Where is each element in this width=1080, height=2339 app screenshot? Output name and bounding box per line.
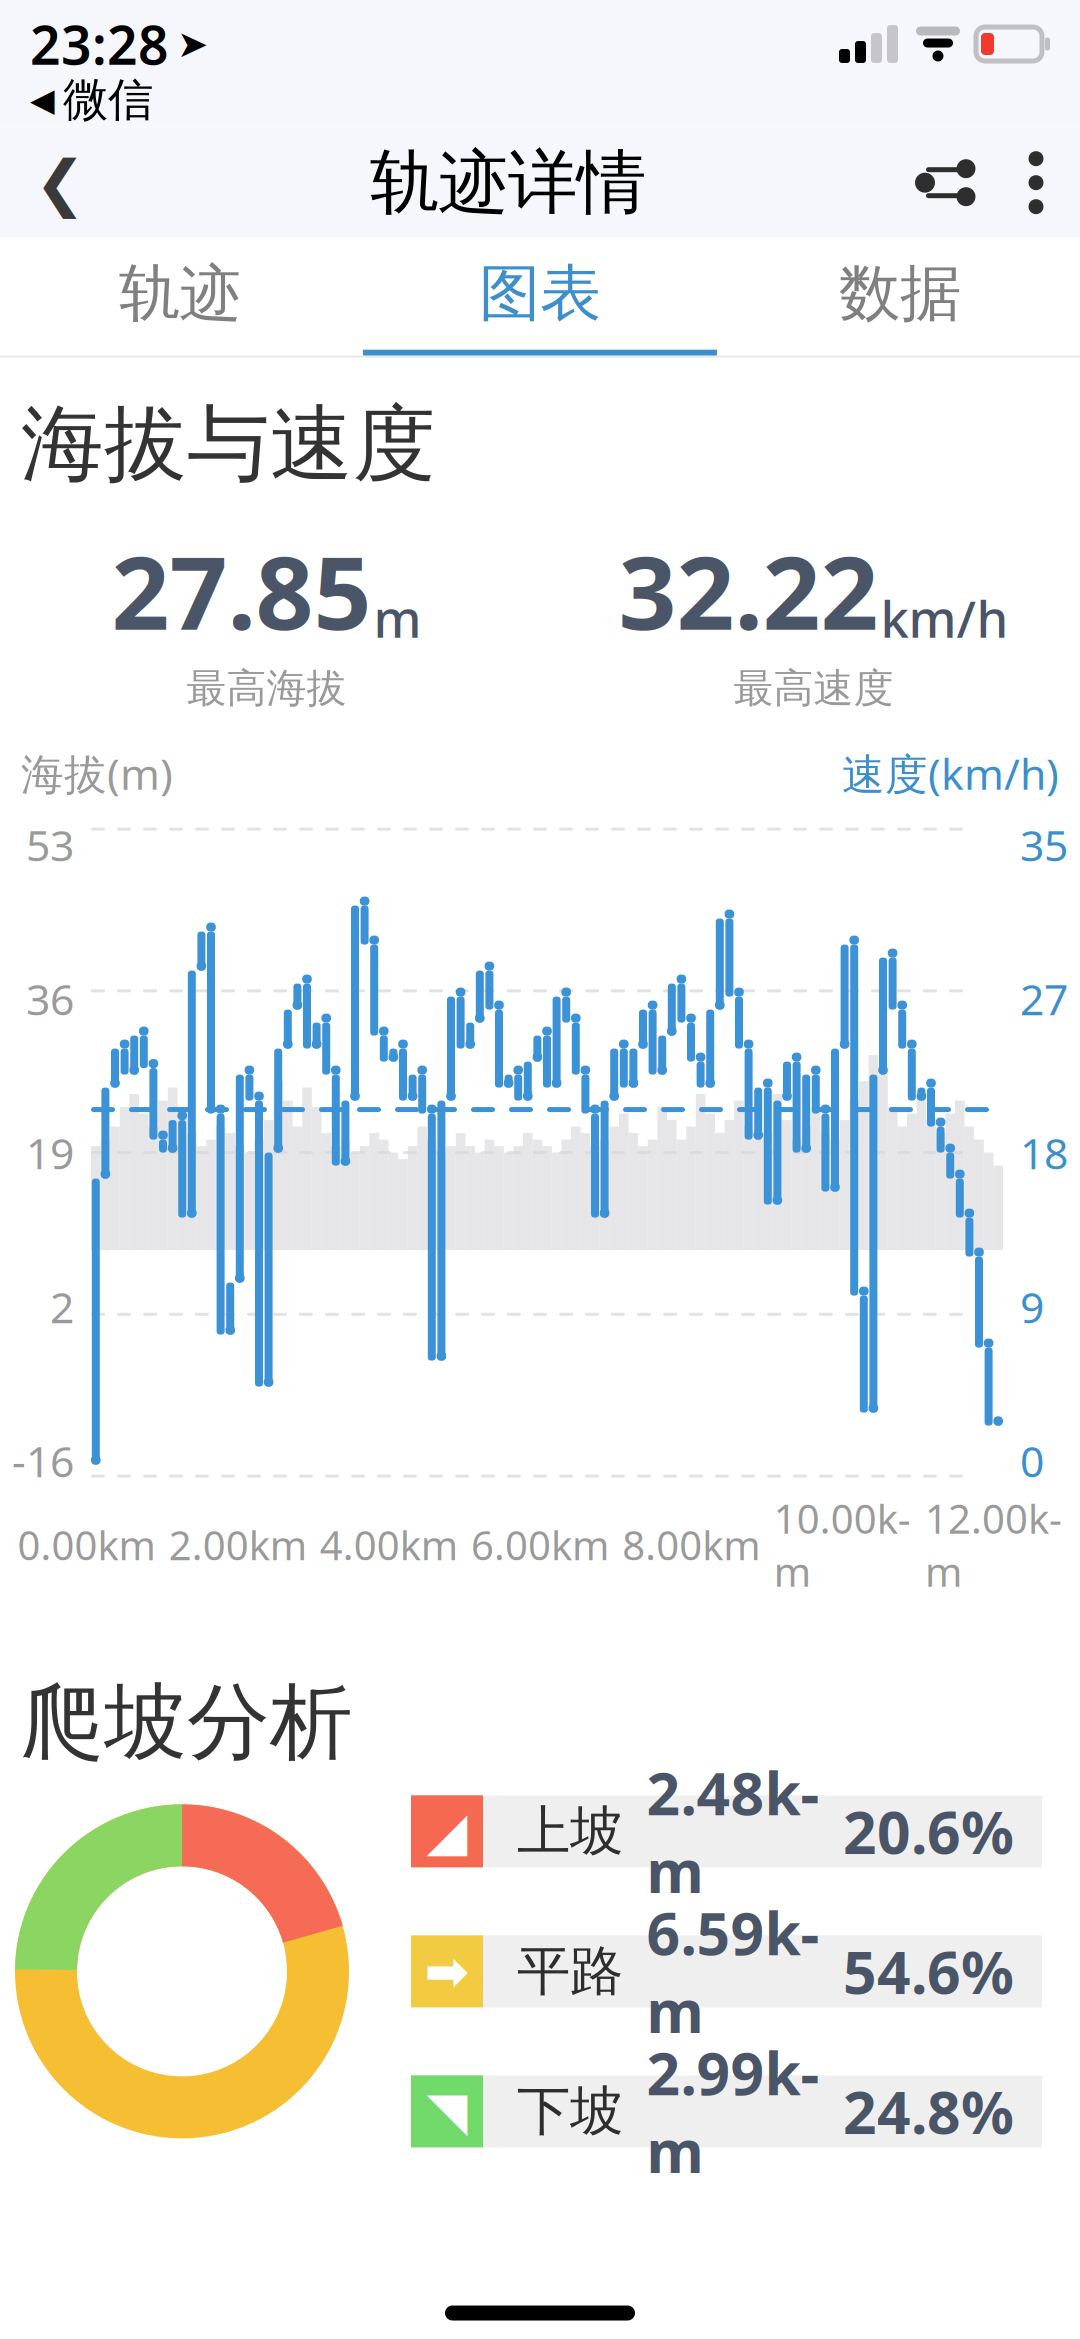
- staticText: 下坡: [517, 2079, 623, 2144]
- staticText: 20.6%: [843, 1792, 1014, 1870]
- staticText: m: [373, 584, 421, 652]
- staticText: 9: [1020, 1278, 1044, 1335]
- staticText: 爬坡分析: [21, 1672, 353, 1773]
- staticText: 10.00km: [774, 1492, 911, 1598]
- button[interactable]: 轨迹: [0, 238, 360, 356]
- staticText: 最高速度: [733, 664, 893, 713]
- staticText: 0.00km: [18, 1518, 156, 1571]
- staticText: 上坡: [517, 1799, 623, 1864]
- staticText: ◥: [426, 2081, 467, 2142]
- staticText: 轨迹: [119, 256, 241, 331]
- staticText: 数据: [839, 256, 961, 331]
- staticText: ➡: [424, 1941, 469, 2002]
- staticText: 微信: [63, 72, 153, 128]
- staticText: 12.00km: [925, 1492, 1062, 1598]
- staticText: 速度(km/h): [842, 745, 1059, 802]
- staticText: ◀: [30, 82, 55, 118]
- button[interactable]: Back: [0, 128, 120, 238]
- staticText: 18: [1020, 1124, 1068, 1181]
- staticText: 6.59km: [646, 1893, 819, 2049]
- staticText: ➤: [177, 23, 208, 65]
- button[interactable]: More options: [992, 128, 1080, 238]
- staticText: 27.85: [111, 523, 371, 658]
- staticText: 23:28: [30, 9, 169, 79]
- button[interactable]: ➡: [411, 1935, 1042, 2007]
- staticText: 8.00km: [622, 1518, 760, 1571]
- staticText: 海拔与速度: [21, 394, 436, 495]
- staticText: 2.00km: [169, 1518, 307, 1571]
- button[interactable]: ◥: [411, 2075, 1042, 2147]
- staticText: 36: [26, 970, 74, 1027]
- staticText: 54.6%: [843, 1932, 1014, 2010]
- button[interactable]: 图表: [360, 238, 720, 356]
- staticText: 19: [26, 1124, 74, 1181]
- staticText: -16: [12, 1432, 74, 1489]
- staticText: 轨迹详情: [370, 140, 646, 225]
- staticText: 0: [1020, 1432, 1044, 1489]
- staticText: ❮: [34, 148, 85, 217]
- button[interactable]: Share: [896, 128, 992, 238]
- staticText: 海拔(m): [21, 745, 173, 802]
- staticText: ◢: [426, 1801, 467, 1862]
- button[interactable]: ◢: [411, 1795, 1042, 1867]
- button[interactable]: 数据: [720, 238, 1080, 356]
- staticText: 6.00km: [471, 1518, 609, 1571]
- staticText: 35: [1020, 816, 1068, 873]
- staticText: 27: [1020, 970, 1068, 1027]
- staticText: 图表: [479, 256, 601, 331]
- staticText: 2.48km: [646, 1753, 819, 1909]
- staticText: 2.99km: [646, 2033, 819, 2189]
- staticText: 平路: [517, 1939, 623, 2004]
- staticText: 24.8%: [843, 2072, 1014, 2150]
- staticText: km/h: [880, 584, 1008, 652]
- staticText: 最高海拔: [186, 664, 346, 713]
- staticText: 4.00km: [320, 1518, 458, 1571]
- staticText: 2: [50, 1278, 74, 1335]
- staticText: 53: [26, 816, 74, 873]
- button[interactable]: ◀: [30, 72, 153, 128]
- staticText: 32.22: [618, 523, 878, 658]
